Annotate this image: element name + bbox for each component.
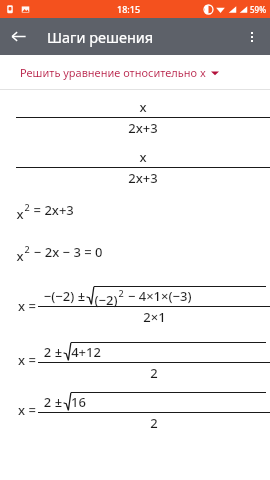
staticText: 2×1 [143, 308, 166, 326]
staticText: 2 ± [42, 343, 64, 361]
staticText: −(−2) ± [42, 287, 87, 305]
staticText: 2 [24, 201, 30, 213]
button[interactable]: Решить уравнение относительно x [0, 55, 270, 90]
staticText: x = [16, 401, 38, 419]
staticText: 18:15 [117, 3, 141, 15]
staticText: − 2x − 3 = 0 [30, 243, 103, 261]
staticText: x [16, 247, 24, 265]
staticText: x [16, 205, 24, 223]
staticText: x [139, 98, 147, 116]
staticText: = 2x+3 [30, 201, 74, 219]
staticText: 2 [24, 243, 30, 255]
staticText: 4+12 [71, 343, 101, 361]
staticText: 2 [150, 414, 158, 428]
staticText: (−2) [94, 291, 118, 309]
staticText: 2 ± [42, 393, 64, 411]
staticText: 2x+3 [128, 119, 158, 134]
staticText: Решить уравнение относительно x [20, 65, 206, 80]
staticText: 2 [150, 364, 158, 378]
staticText: − 4×1×(−3) [124, 287, 192, 305]
button[interactable]: Back [0, 18, 37, 55]
button[interactable]: More options [233, 18, 270, 55]
staticText: x = [16, 351, 38, 369]
staticText: Шаги решения [47, 27, 154, 47]
staticText: 16 [71, 393, 86, 411]
staticText: x = [16, 297, 38, 315]
staticText: 2 [118, 287, 124, 299]
staticText: 59% [250, 4, 266, 15]
staticText: x [139, 148, 147, 166]
staticText: 2x+3 [128, 169, 158, 184]
